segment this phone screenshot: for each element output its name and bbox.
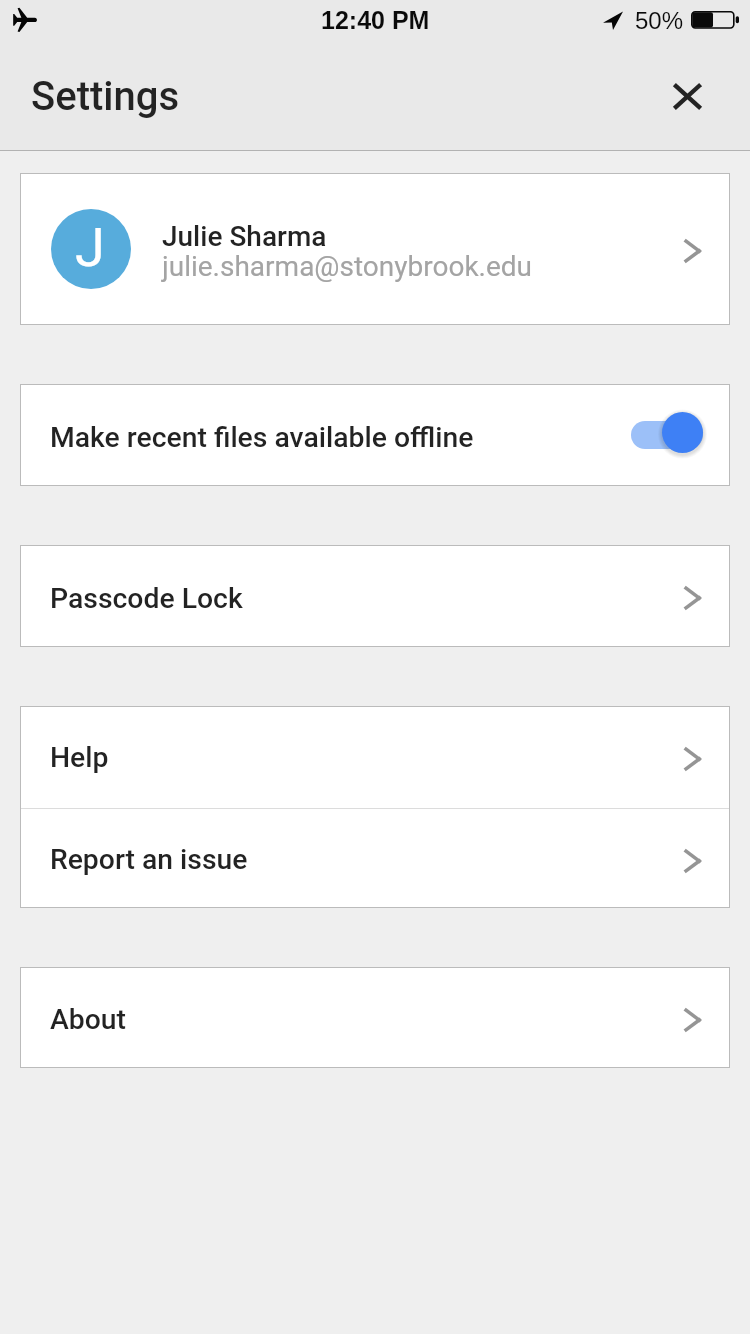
staticText: J xyxy=(75,216,105,279)
button[interactable]: Report an issue xyxy=(20,809,730,908)
staticText: Julie Sharma xyxy=(162,220,327,253)
button[interactable]: Close xyxy=(665,74,709,118)
staticText: Report an issue xyxy=(50,843,248,876)
button[interactable]: Make recent files available offline xyxy=(20,384,730,486)
button[interactable]: J xyxy=(20,173,730,325)
staticText: Passcode Lock xyxy=(50,582,243,615)
staticText: About xyxy=(50,1003,127,1036)
staticText: Settings xyxy=(31,73,180,120)
button[interactable]: Passcode Lock xyxy=(20,545,730,647)
staticText: Help xyxy=(50,741,109,774)
button[interactable]: About xyxy=(20,967,730,1068)
staticText: Make recent files available offline xyxy=(50,421,474,454)
button[interactable]: Help xyxy=(20,706,730,808)
staticText: julie.sharma@stonybrook.edu xyxy=(162,250,533,283)
staticText: 12:40 PM xyxy=(321,6,430,34)
staticText: 50% xyxy=(635,7,684,34)
